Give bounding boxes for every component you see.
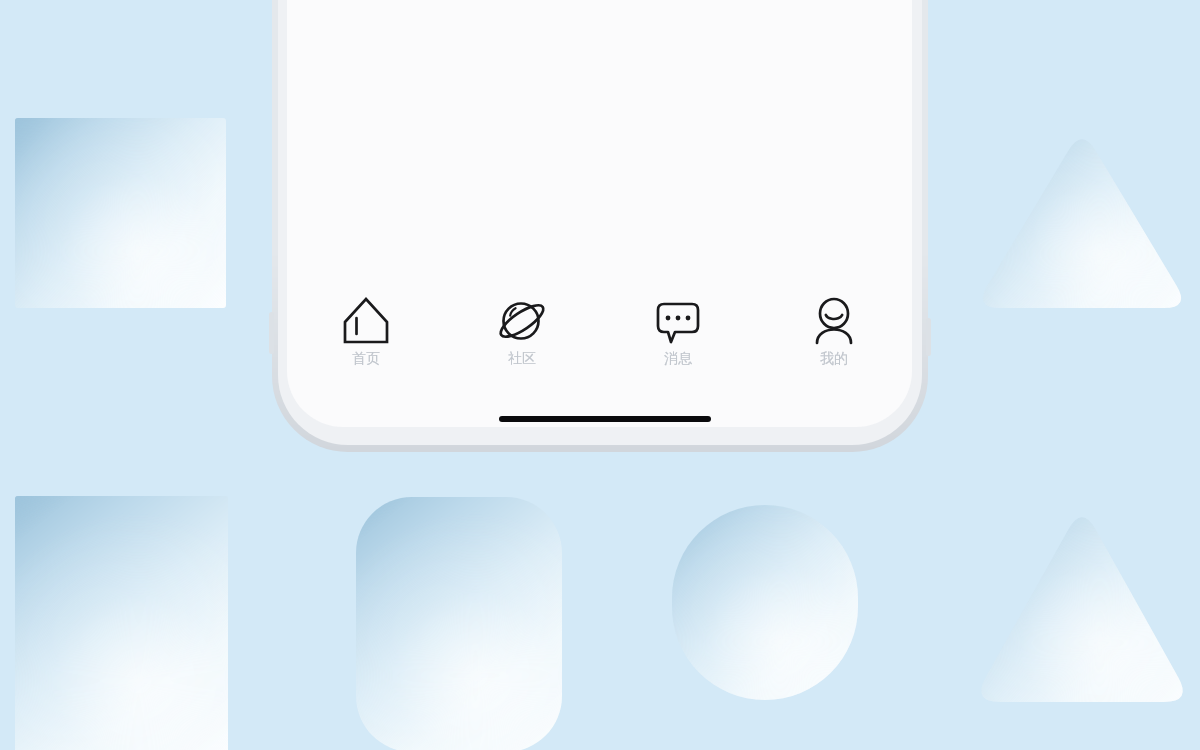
button[interactable]: Messages bbox=[600, 292, 756, 388]
staticText: 首页 bbox=[352, 350, 380, 368]
staticText: 我的 bbox=[820, 350, 848, 368]
button[interactable]: Community bbox=[444, 292, 600, 388]
staticText: 社区 bbox=[508, 350, 536, 368]
staticText: 消息 bbox=[664, 350, 692, 368]
button[interactable]: Profile bbox=[756, 292, 912, 388]
button[interactable]: Home bbox=[287, 292, 444, 388]
